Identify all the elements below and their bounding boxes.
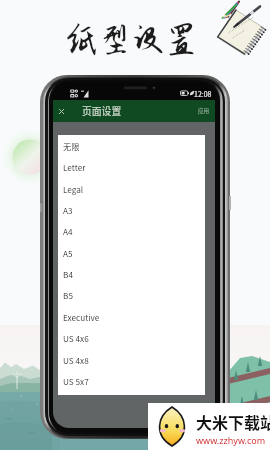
button[interactable]: Letter — [58, 156, 205, 177]
staticText: B4 — [63, 268, 73, 280]
staticText: US 4x6 — [63, 332, 89, 344]
button[interactable]: Close — [53, 100, 69, 122]
staticText: B5 — [63, 289, 73, 301]
button[interactable]: A4 — [58, 220, 205, 241]
staticText: Legal — [63, 183, 84, 195]
staticText: 页面设置 — [82, 104, 122, 118]
button[interactable]: 应用 — [192, 102, 215, 120]
staticText: Letter — [63, 161, 86, 173]
staticText: Executive — [63, 311, 100, 323]
button[interactable]: A3 — [58, 199, 205, 220]
staticText: A5 — [63, 247, 73, 259]
staticText: US 4x8 — [63, 354, 89, 366]
button[interactable]: A5 — [58, 242, 205, 263]
staticText: www.zzhyw.com — [196, 434, 266, 446]
staticText: 12:08 — [194, 89, 212, 99]
button[interactable]: Legal — [58, 178, 205, 199]
staticText: 纸型设置 — [65, 21, 199, 58]
staticText: A4 — [63, 225, 73, 237]
staticText: US 5x7 — [63, 375, 89, 387]
staticText: A3 — [63, 204, 73, 216]
staticText: 应用 — [198, 107, 210, 115]
staticText: 大米下载站 — [196, 410, 270, 433]
staticText: 无限 — [63, 140, 80, 152]
button[interactable]: US 4x8 — [58, 349, 205, 370]
button[interactable]: 无限 — [58, 135, 205, 156]
button[interactable]: B4 — [58, 263, 205, 284]
button[interactable]: Executive — [58, 306, 205, 327]
button[interactable]: US 5x7 — [58, 370, 205, 391]
button[interactable]: B5 — [58, 284, 205, 305]
button[interactable]: US 4x6 — [58, 327, 205, 348]
